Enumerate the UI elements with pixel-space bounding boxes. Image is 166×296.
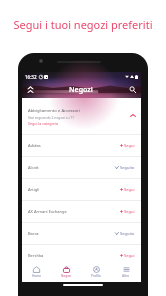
staticText: Altro [122, 274, 130, 278]
staticText: Artigli [28, 187, 40, 192]
button[interactable]: Abbigliamento e Accessori [22, 98, 141, 134]
button[interactable]: Adidas [22, 135, 141, 156]
staticText: Segui [124, 253, 135, 258]
button[interactable]: Comprimi [127, 110, 138, 121]
staticText: Profilo [91, 274, 101, 278]
button[interactable]: Negozi [51, 262, 81, 282]
staticText: Negozi [61, 274, 72, 278]
button[interactable]: Barca [22, 223, 141, 244]
button[interactable]: AX Armani Exchange [22, 201, 141, 222]
button[interactable]: Alcott [22, 157, 141, 178]
staticText: AX Armani Exchange [28, 209, 67, 214]
staticText: Home [32, 274, 42, 278]
button[interactable]: Altro [111, 262, 141, 282]
button[interactable]: Cerca [127, 84, 138, 95]
staticText: Seguito [120, 231, 135, 236]
staticText: Seguito [120, 165, 135, 170]
button[interactable]: Menu [25, 84, 36, 95]
staticText: Negozi [69, 85, 93, 95]
staticText: Segui [124, 143, 135, 148]
button[interactable]: Bershka [22, 245, 141, 266]
staticText: Stai seguendo 2 negozi su 77 [28, 115, 75, 120]
staticText: Segui [124, 209, 135, 214]
staticText: 16:32 [25, 74, 37, 80]
staticText: Bershka [28, 253, 44, 258]
staticText: Adidas [28, 143, 41, 148]
button[interactable]: Profilo [81, 262, 111, 282]
staticText: Segui i tuoi negozi preferiti [0, 17, 166, 32]
staticText: Abbigliamento e Accessori [28, 108, 80, 114]
staticText: Barca [28, 231, 39, 236]
button[interactable]: Home [22, 262, 51, 282]
staticText: Segui [124, 187, 135, 192]
staticText: Segui la categoria [28, 121, 59, 126]
staticText: Alcott [28, 165, 39, 170]
button[interactable]: Artigli [22, 179, 141, 200]
